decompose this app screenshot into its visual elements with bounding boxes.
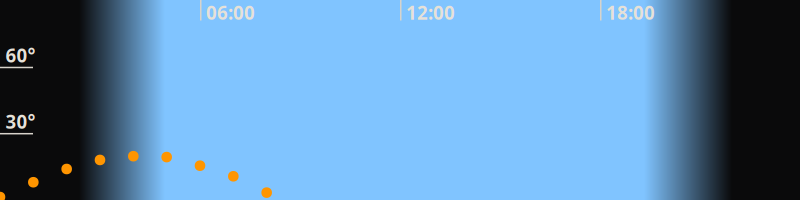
staticText: 60° xyxy=(5,43,35,68)
staticText: 06:00 xyxy=(206,0,255,25)
staticText: 12:00 xyxy=(406,0,455,25)
staticText: 18:00 xyxy=(606,0,655,25)
staticText: 30° xyxy=(5,109,35,134)
